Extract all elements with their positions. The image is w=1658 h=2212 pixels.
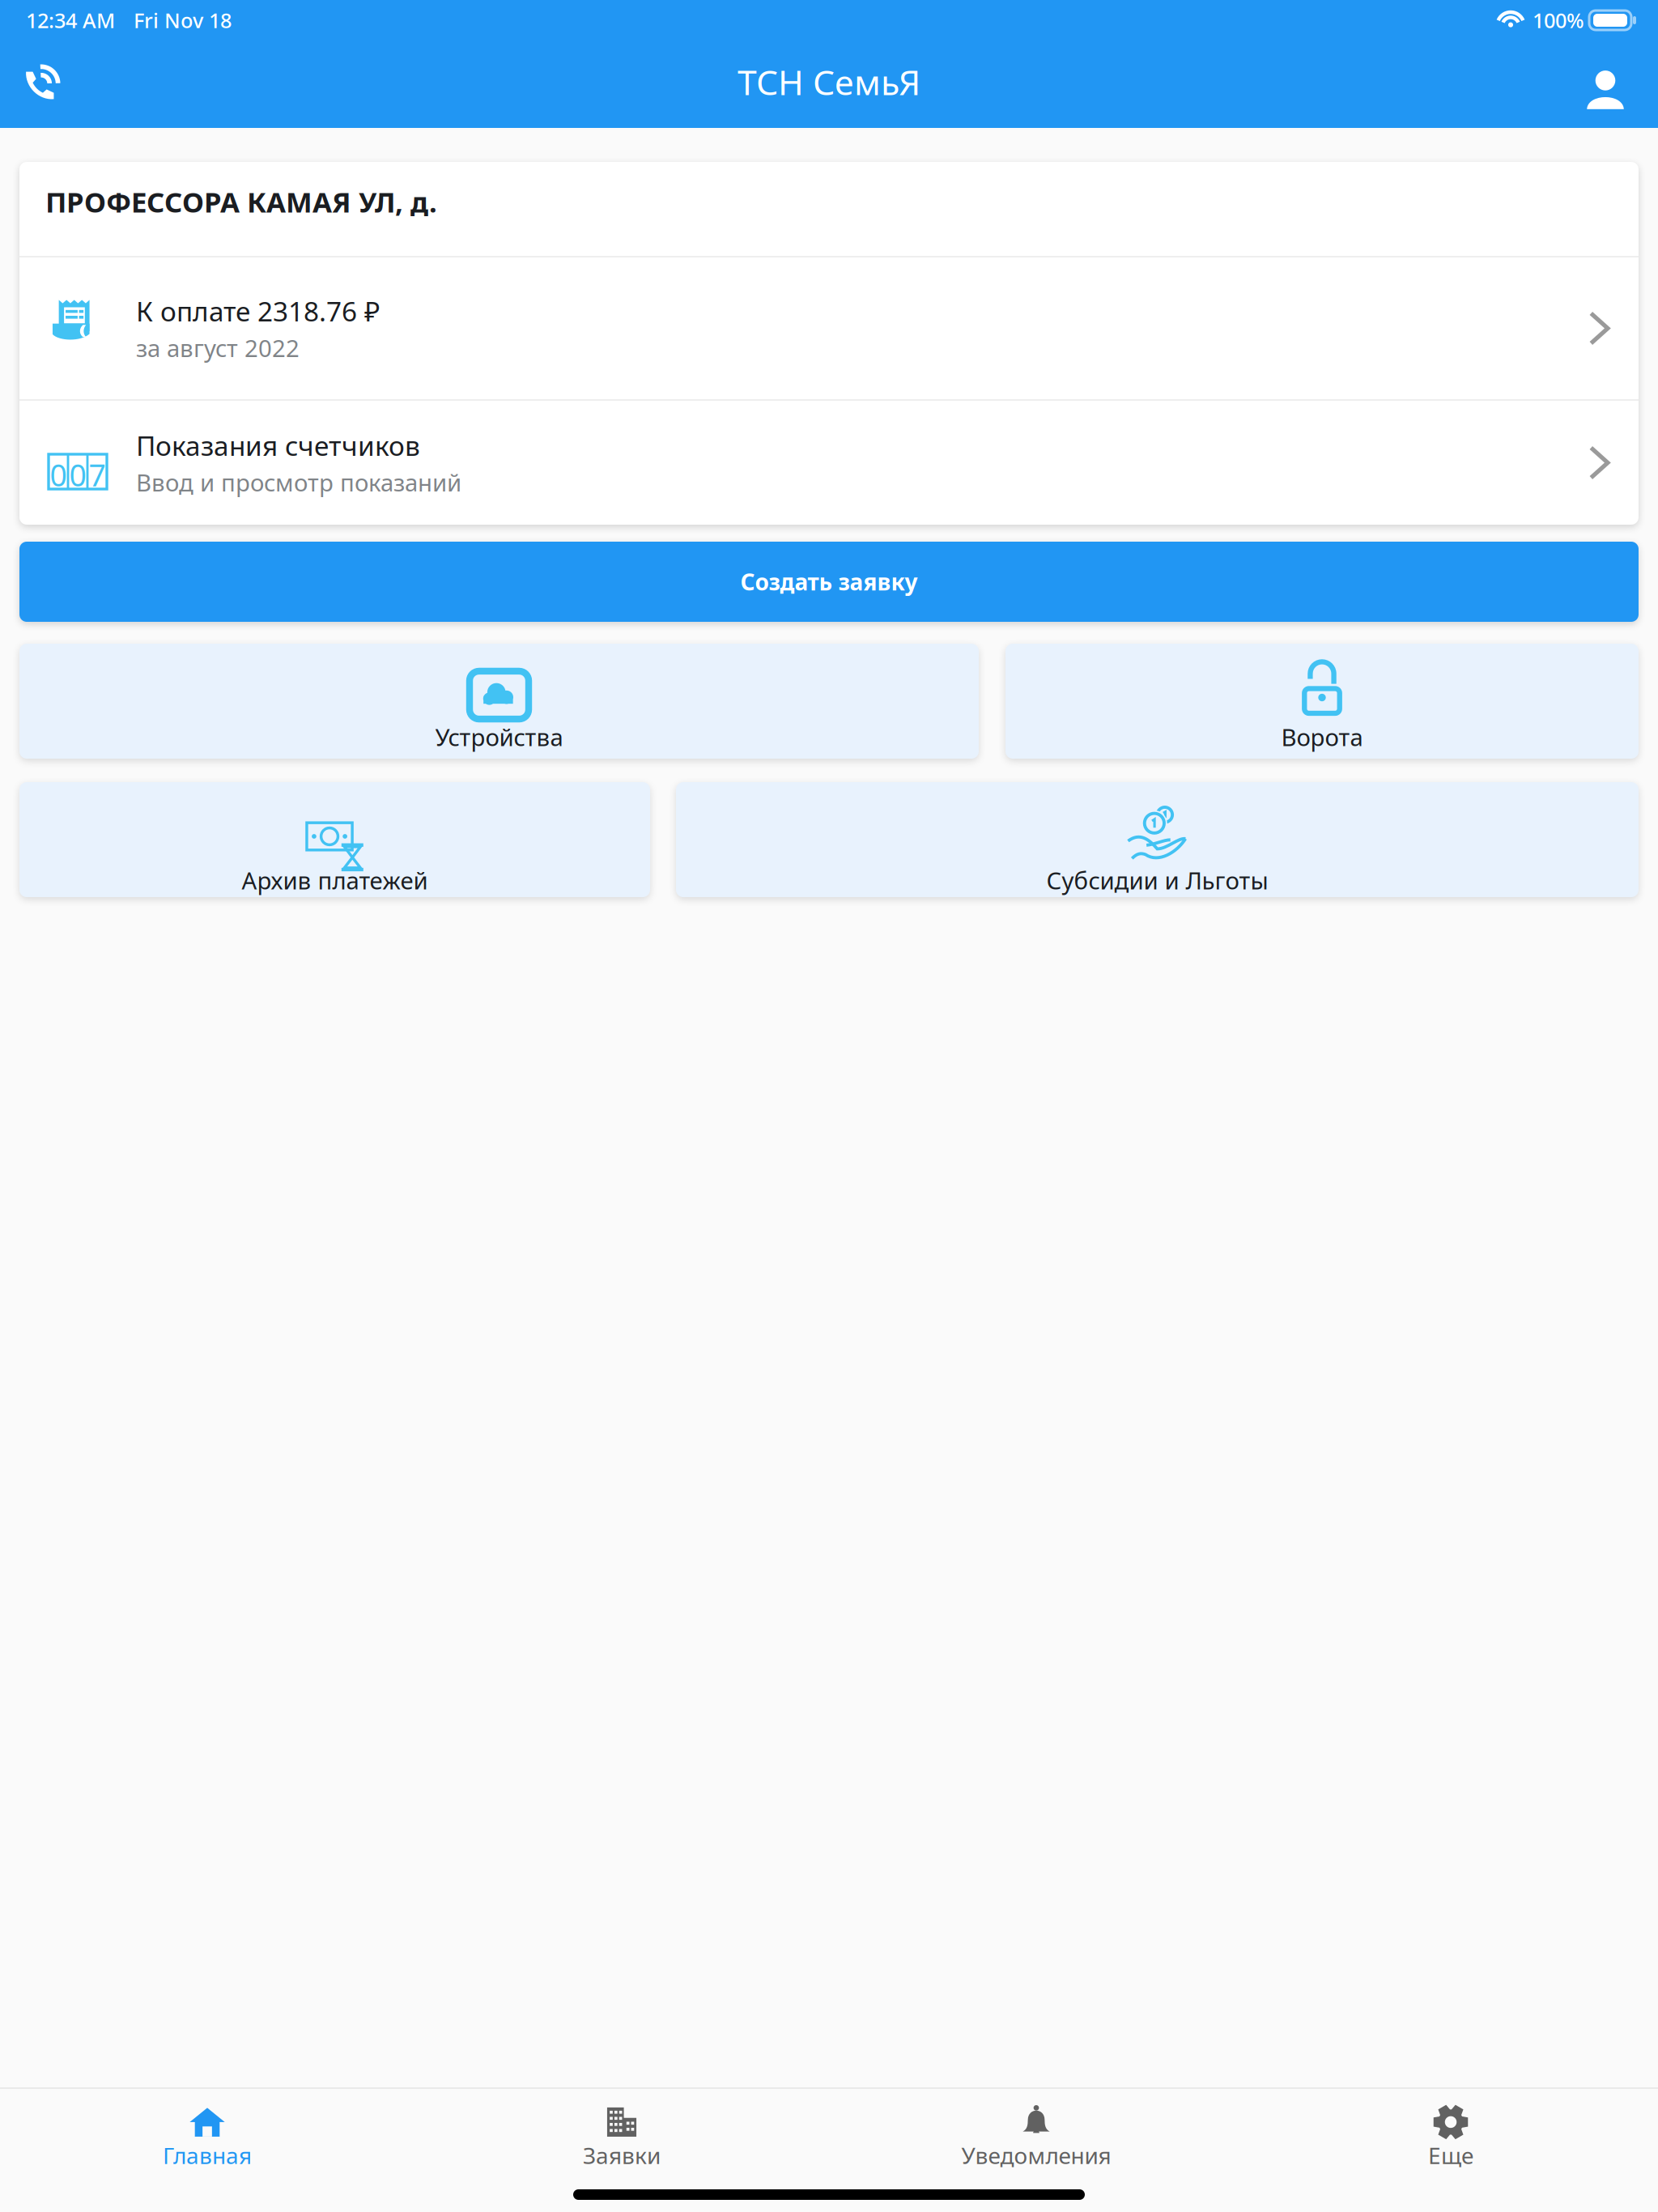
staticText: 7 <box>89 455 106 495</box>
button[interactable]: 0 <box>19 401 1639 525</box>
button[interactable]: Главная <box>0 2089 414 2176</box>
staticText: ПРОФЕССОРА КАМАЯ УЛ, д. <box>45 183 437 220</box>
staticText: Субсидии и Льготы <box>1046 864 1268 896</box>
button[interactable]: Создать заявку <box>19 542 1639 622</box>
button[interactable]: Субсидии и Льготы <box>676 782 1639 897</box>
staticText: Fri Nov 18 <box>134 7 232 34</box>
button[interactable]: Архив платежей <box>19 782 650 897</box>
staticText: за август 2022 <box>136 332 300 364</box>
staticText: Заявки <box>583 2140 661 2170</box>
staticText: Архив платежей <box>242 864 428 896</box>
staticText: Создать заявку <box>740 567 918 597</box>
button[interactable]: Еще <box>1243 2089 1658 2176</box>
staticText: 0 <box>50 455 67 495</box>
button[interactable]: Call <box>6 49 83 126</box>
staticText: 12:34 AM <box>26 7 115 34</box>
staticText: 0 <box>69 455 86 495</box>
staticText: Устройства <box>435 721 563 753</box>
button[interactable]: Ворота <box>1005 644 1639 759</box>
button[interactable]: Заявки <box>414 2089 829 2176</box>
button[interactable]: К оплате 2318.76 ₽ <box>19 257 1639 399</box>
button[interactable]: Profile <box>1567 49 1644 126</box>
button[interactable]: Устройства <box>19 644 979 759</box>
staticText: Ворота <box>1281 721 1363 753</box>
staticText: Уведомления <box>961 2140 1111 2170</box>
staticText: Еще <box>1428 2140 1473 2170</box>
button[interactable]: Уведомления <box>829 2089 1243 2176</box>
staticText: К оплате 2318.76 ₽ <box>136 293 380 329</box>
staticText: Ввод и просмотр показаний <box>136 467 461 498</box>
staticText: ТСН СемьЯ <box>738 59 920 105</box>
staticText: Показания счетчиков <box>136 427 420 463</box>
staticText: Главная <box>163 2140 252 2170</box>
staticText: 100% <box>1533 7 1584 34</box>
